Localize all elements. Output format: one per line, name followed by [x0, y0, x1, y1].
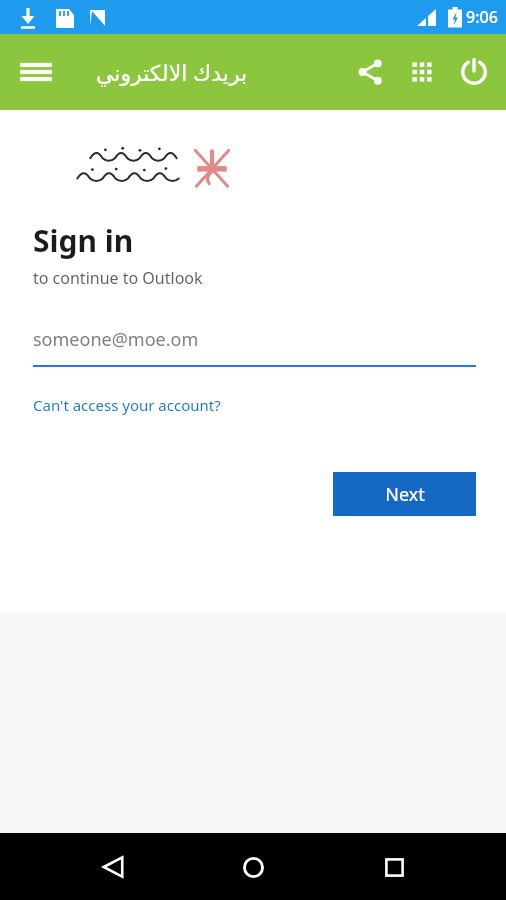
button[interactable]: Can't access your account? [33, 395, 221, 415]
button[interactable]: Recent apps [366, 839, 422, 895]
staticText: بريدك الالكتروني [96, 57, 248, 87]
staticText: 9:06 [466, 6, 498, 28]
button[interactable]: Share [344, 46, 396, 98]
staticText: Can't access your account? [33, 395, 221, 415]
button[interactable]: Back [85, 839, 141, 895]
staticText: Sign in [33, 220, 134, 261]
button[interactable]: Apps [396, 46, 448, 98]
staticText: Next [385, 482, 425, 507]
button[interactable]: someone@moe.om [33, 327, 476, 367]
button[interactable]: Sign out [448, 46, 500, 98]
button[interactable]: Home [225, 839, 281, 895]
staticText: someone@moe.om [33, 327, 199, 352]
staticText: to continue to Outlook [33, 267, 203, 289]
button[interactable]: Next [333, 472, 476, 516]
button[interactable]: Open navigation menu [10, 46, 62, 98]
